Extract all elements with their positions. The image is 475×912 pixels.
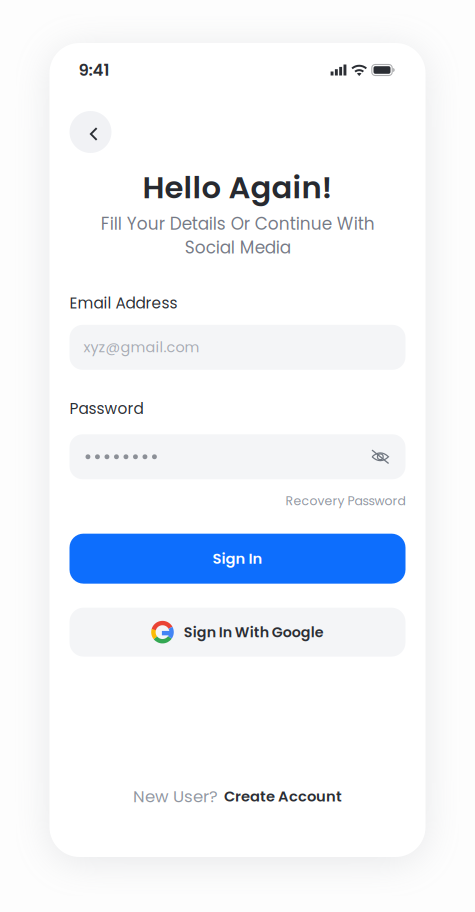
staticText: Password: [69, 398, 143, 419]
staticText: Sign In: [212, 548, 262, 569]
staticText: Fill Your Details Or Continue With Socia…: [100, 212, 374, 259]
staticText: Create Account: [224, 786, 342, 807]
button[interactable]: Show password: [371, 450, 389, 464]
staticText: Email Address: [69, 292, 177, 314]
button[interactable]: Recovery Password: [285, 492, 405, 510]
staticText: 9:41: [78, 58, 109, 81]
staticText: Hello Again!: [142, 166, 332, 209]
staticText: Recovery Password: [285, 492, 405, 510]
button[interactable]: Sign In With Google: [69, 608, 405, 657]
staticText: xyz@gmail.com: [83, 337, 199, 357]
staticText: Sign In With Google: [184, 622, 324, 642]
staticText: New User?: [133, 785, 218, 808]
button[interactable]: New User?: [133, 785, 342, 808]
button[interactable]: Back: [69, 111, 111, 153]
button[interactable]: Sign In: [69, 534, 405, 584]
